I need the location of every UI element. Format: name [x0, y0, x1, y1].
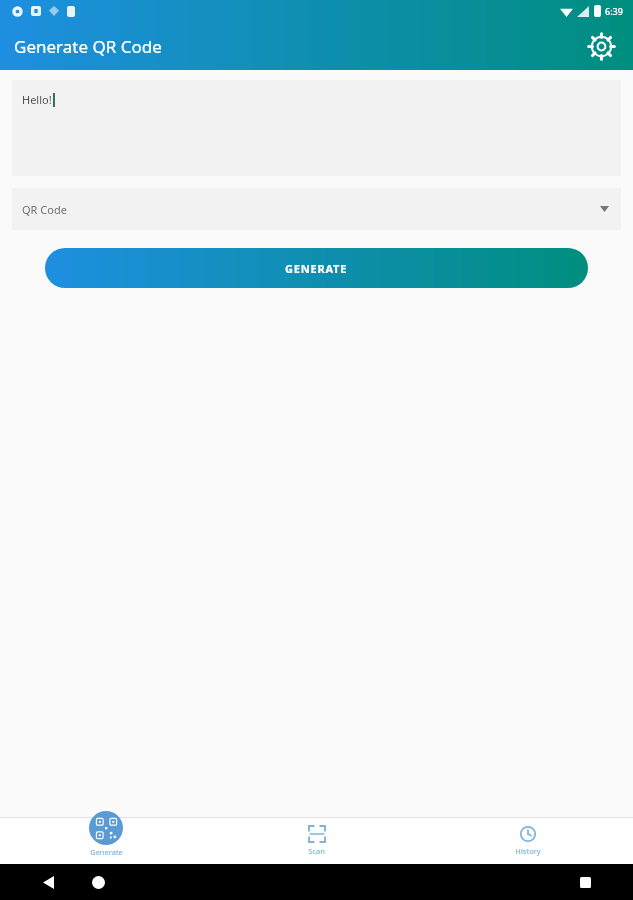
button[interactable]: History — [422, 826, 633, 856]
staticText: Scan — [308, 846, 325, 856]
staticText: Hello! — [22, 92, 52, 107]
staticText: Generate — [90, 847, 123, 857]
button[interactable]: Settings — [581, 26, 621, 66]
button[interactable]: Home — [84, 868, 112, 896]
staticText: QR Code — [22, 202, 67, 217]
staticText: History — [515, 846, 541, 856]
button[interactable]: GENERATE — [45, 248, 588, 288]
staticText: 6:39 — [605, 5, 623, 17]
button[interactable]: Hello! — [12, 80, 621, 176]
button[interactable]: QR Code — [12, 188, 621, 230]
button[interactable]: Recents — [571, 868, 599, 896]
button[interactable]: Generate — [0, 819, 211, 863]
button[interactable]: Scan — [211, 826, 422, 856]
staticText: Generate QR Code — [14, 35, 162, 58]
staticText: GENERATE — [285, 261, 348, 276]
button[interactable]: Back — [34, 868, 62, 896]
